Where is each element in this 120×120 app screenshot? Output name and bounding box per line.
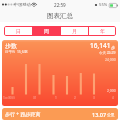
staticText: 步行 + 跑步距离: [5, 111, 41, 118]
staticText: 日: [16, 28, 21, 34]
button[interactable]: 年: [89, 26, 116, 36]
button[interactable]: 月: [61, 26, 88, 36]
staticText: 图表汇总: [47, 12, 73, 20]
staticText: 日平均 15,638: [5, 49, 28, 54]
staticText: 31: [33, 96, 37, 100]
button[interactable]: 步数: [2, 40, 118, 106]
staticText: 中国移动: [14, 2, 31, 7]
staticText: 2,000: [107, 88, 116, 93]
staticText: 周: [44, 28, 49, 34]
staticText: 24,000: [105, 57, 116, 62]
staticText: 16,141: [90, 41, 111, 50]
staticText: 月: [72, 28, 77, 34]
staticText: 1: [55, 96, 57, 100]
staticText: 公里: [107, 112, 115, 117]
staticText: 1月30日: [3, 96, 15, 100]
staticText: 3: [93, 96, 95, 100]
staticText: 步数: [5, 42, 17, 50]
staticText: 55%: [99, 2, 108, 8]
button[interactable]: 日: [4, 26, 32, 36]
button[interactable]: 步行 + 跑步距离: [2, 108, 118, 120]
staticText: 今天 22:29: [99, 50, 116, 55]
button[interactable]: 周: [33, 26, 60, 36]
staticText: 年: [100, 28, 105, 34]
staticText: 13.07: [92, 111, 107, 118]
staticText: 步: [111, 45, 115, 50]
staticText: 22:59: [54, 2, 66, 8]
staticText: 2: [74, 96, 76, 100]
staticText: 4: [112, 96, 114, 100]
